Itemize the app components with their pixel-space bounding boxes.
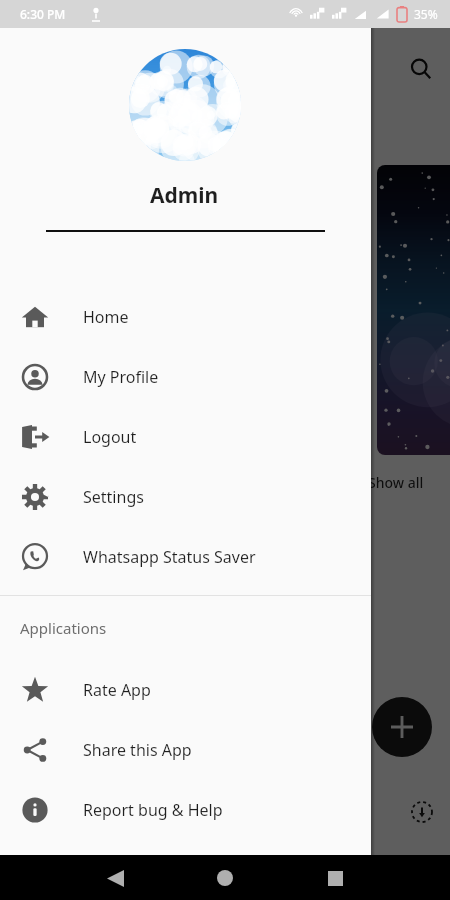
staticText: My Profile bbox=[83, 366, 159, 388]
button[interactable]: My Profile bbox=[0, 347, 371, 407]
staticText: Share this App bbox=[83, 739, 192, 761]
button[interactable]: Back bbox=[95, 858, 135, 898]
staticText: Applications bbox=[20, 618, 107, 638]
staticText: Admin bbox=[150, 181, 219, 210]
button[interactable]: Recent apps bbox=[315, 858, 355, 898]
staticText: 6:30 PM bbox=[20, 6, 66, 22]
button[interactable]: Add bbox=[372, 697, 432, 757]
staticText: Show all bbox=[368, 473, 424, 492]
staticText: Home bbox=[83, 306, 129, 328]
staticText: Whatsapp Status Saver bbox=[83, 546, 256, 568]
button[interactable]: Home bbox=[205, 858, 245, 898]
staticText: 35% bbox=[414, 6, 438, 22]
button[interactable]: Report bug & Help bbox=[0, 780, 371, 840]
button[interactable]: Settings bbox=[0, 467, 371, 527]
button[interactable]: Download bbox=[408, 798, 436, 826]
button[interactable]: Share this App bbox=[0, 720, 371, 780]
button[interactable]: Search bbox=[404, 52, 438, 86]
button[interactable]: Logout bbox=[0, 407, 371, 467]
staticText: Report bug & Help bbox=[83, 799, 223, 821]
button[interactable]: Profile picture bbox=[129, 49, 241, 161]
button[interactable]: Home bbox=[0, 287, 371, 347]
button[interactable]: Whatsapp Status Saver bbox=[0, 527, 371, 587]
staticText: Rate App bbox=[83, 679, 151, 701]
staticText: Logout bbox=[83, 426, 137, 448]
button[interactable]: Rate App bbox=[0, 660, 371, 720]
button[interactable] bbox=[377, 165, 450, 455]
staticText: Settings bbox=[83, 486, 144, 508]
